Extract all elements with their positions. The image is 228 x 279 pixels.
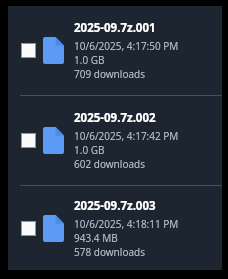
other: File [43, 37, 64, 64]
staticText: 10/6/2025, 4:17:42 PM [74, 129, 179, 143]
button[interactable]: Select 2025-09.7z.002 [8, 96, 222, 185]
button[interactable]: Select 2025-09.7z.003 [21, 221, 36, 236]
staticText: 578 downloads [74, 245, 145, 259]
other: File [43, 127, 64, 154]
staticText: 1.0 GB [74, 143, 105, 157]
other: File [43, 215, 64, 242]
staticText: 943.4 MB [74, 231, 118, 245]
button[interactable]: Select 2025-09.7z.001 [8, 6, 222, 95]
staticText: 2025-09.7z.002 [74, 110, 156, 126]
staticText: 2025-09.7z.001 [74, 20, 156, 36]
button[interactable]: Select 2025-09.7z.001 [21, 43, 36, 58]
staticText: 2025-09.7z.003 [74, 198, 156, 214]
button[interactable]: Select 2025-09.7z.003 [8, 186, 222, 270]
button[interactable]: Select 2025-09.7z.002 [21, 133, 36, 148]
staticText: 602 downloads [74, 157, 145, 171]
staticText: 10/6/2025, 4:17:50 PM [74, 39, 179, 53]
staticText: 10/6/2025, 4:18:11 PM [74, 217, 179, 231]
staticText: 709 downloads [74, 67, 145, 81]
staticText: 1.0 GB [74, 53, 105, 67]
